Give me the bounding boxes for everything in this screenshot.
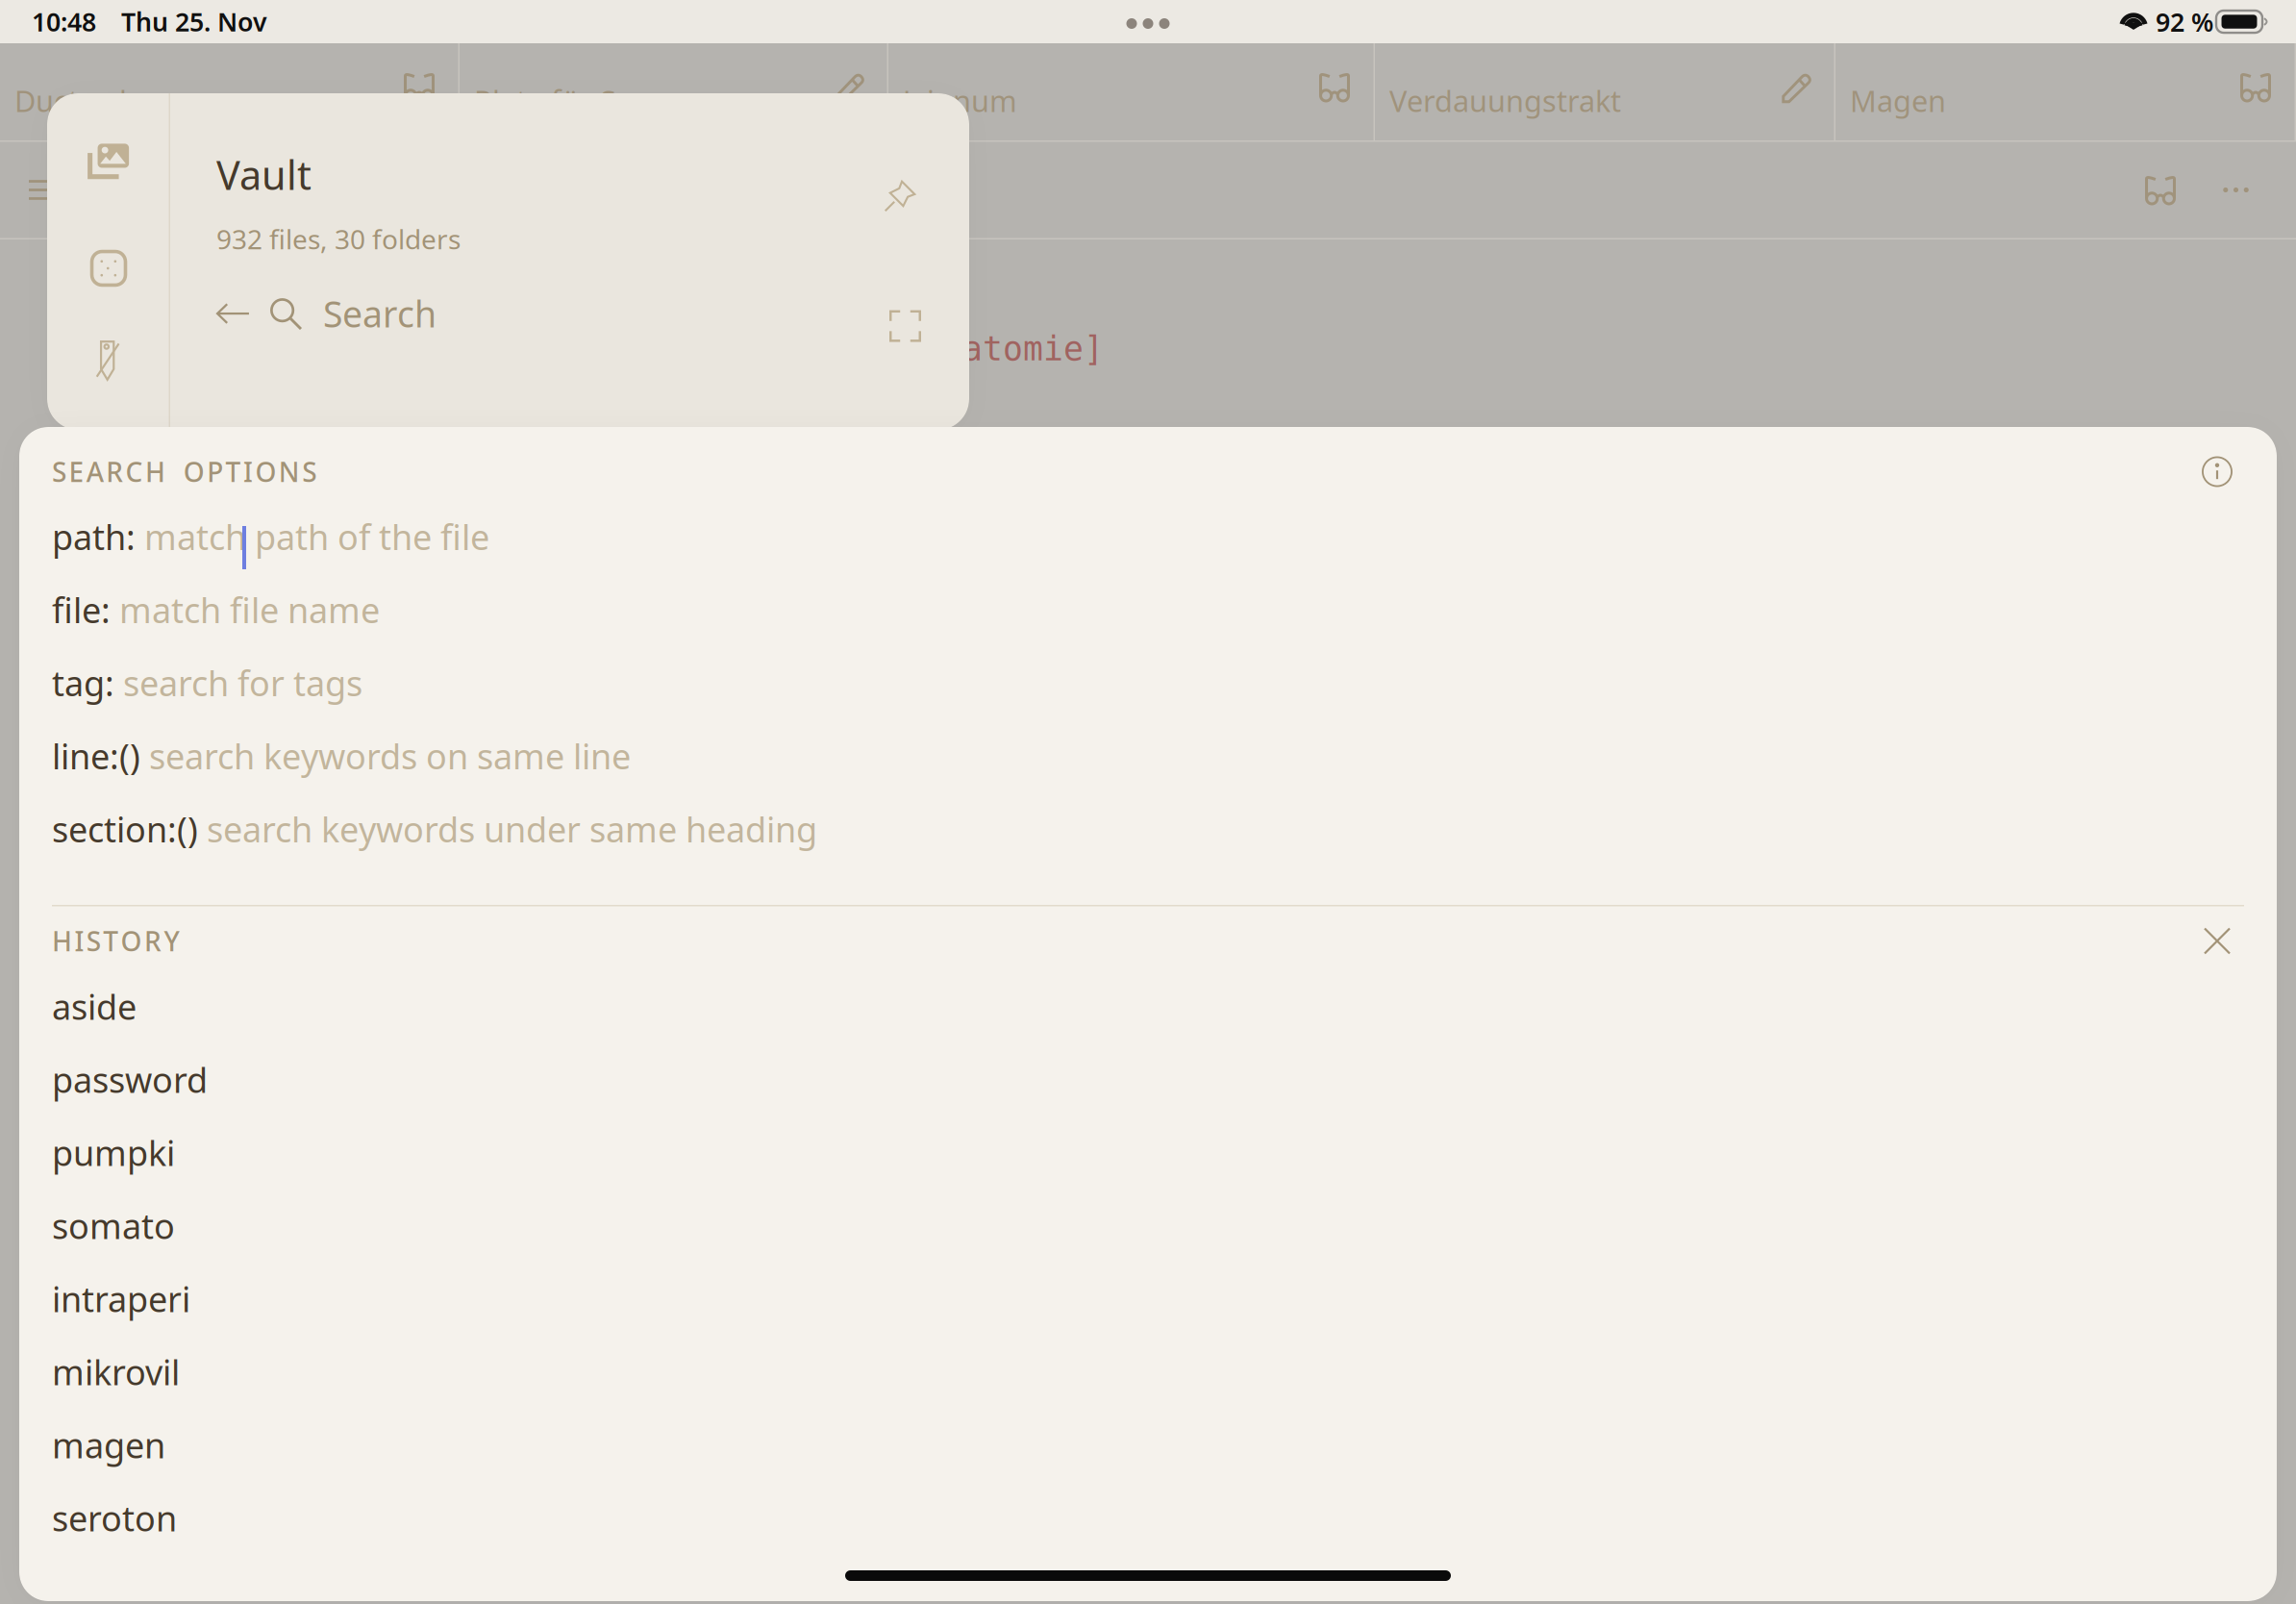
staticText: P [207, 454, 223, 490]
staticText: seroton [52, 1495, 177, 1541]
button[interactable]: section:() [52, 792, 2244, 865]
staticText: I [243, 454, 253, 490]
button[interactable]: pumpki [52, 1116, 2244, 1189]
staticText: C [126, 454, 143, 490]
staticText: 932 files, 30 folders [216, 221, 461, 257]
staticText: Ductus h… [14, 81, 161, 120]
staticText: 10:48 [32, 5, 96, 39]
button[interactable]: intraperi [52, 1262, 2244, 1335]
staticText: Jejunum [903, 81, 1017, 120]
button[interactable]: tag: [52, 646, 2244, 719]
button[interactable]: Attachments [47, 111, 170, 211]
staticText: magen [52, 1422, 165, 1468]
staticText: Verdauungstrakt [1389, 81, 1621, 120]
staticText: aside [52, 983, 137, 1029]
staticText: R [144, 923, 162, 959]
staticText: search keywords on same line [140, 733, 631, 779]
staticText: O [255, 454, 276, 490]
staticText: H [145, 454, 165, 490]
staticText: Vault [216, 148, 312, 201]
staticText: match path of the file [136, 514, 489, 560]
button[interactable]: Canvas [47, 211, 170, 311]
staticText: line:() [52, 733, 140, 779]
staticText: intraperi [52, 1276, 190, 1322]
staticText: N [279, 454, 300, 490]
button[interactable]: file: [52, 573, 2244, 646]
staticText: Ductus hepaticus [[Anatomie] [538, 330, 1104, 368]
staticText: Pleta für S… [474, 81, 639, 120]
staticText: R [106, 454, 123, 490]
staticText: path: [52, 514, 136, 560]
staticText: Magen [1850, 81, 1946, 120]
staticText: O [121, 923, 142, 959]
staticText: mikrovil [52, 1349, 180, 1395]
staticText: pumpki [52, 1130, 175, 1175]
button[interactable]: About search options [2190, 445, 2244, 499]
staticText: S [52, 454, 66, 490]
staticText: S [86, 923, 101, 959]
staticText: I [74, 923, 84, 959]
staticText: O [183, 454, 205, 490]
staticText: H [52, 923, 72, 959]
staticText: T [226, 454, 241, 490]
staticText: 92 % [2156, 5, 2213, 39]
button[interactable]: seroton [52, 1481, 2244, 1554]
button[interactable]: Search [216, 289, 927, 339]
staticText: file: [52, 587, 111, 633]
staticText: search for tags [114, 660, 362, 706]
staticText: S [302, 454, 317, 490]
staticText: Thu 25. Nov [121, 5, 267, 39]
button[interactable]: Tags [47, 311, 170, 411]
staticText: Search [323, 290, 437, 337]
staticText: T [103, 923, 118, 959]
button[interactable]: somato [52, 1189, 2244, 1262]
staticText: A [86, 454, 104, 490]
staticText: password [52, 1056, 208, 1102]
button[interactable]: line:() [52, 719, 2244, 792]
button[interactable]: aside [52, 970, 2244, 1043]
staticText: match file name [111, 587, 380, 633]
staticText: E [69, 454, 84, 490]
button[interactable]: Clear history [2190, 914, 2244, 968]
button[interactable]: password [52, 1043, 2244, 1116]
staticText: Y [164, 923, 179, 959]
button[interactable]: Pin vault [873, 169, 927, 223]
button[interactable]: magen [52, 1408, 2244, 1481]
staticText: search keywords under same heading [198, 806, 817, 852]
staticText: tag: [52, 660, 114, 706]
button[interactable]: mikrovil [52, 1335, 2244, 1408]
button[interactable]: path: [52, 500, 2244, 573]
staticText: section:() [52, 806, 198, 852]
staticText: somato [52, 1203, 175, 1249]
